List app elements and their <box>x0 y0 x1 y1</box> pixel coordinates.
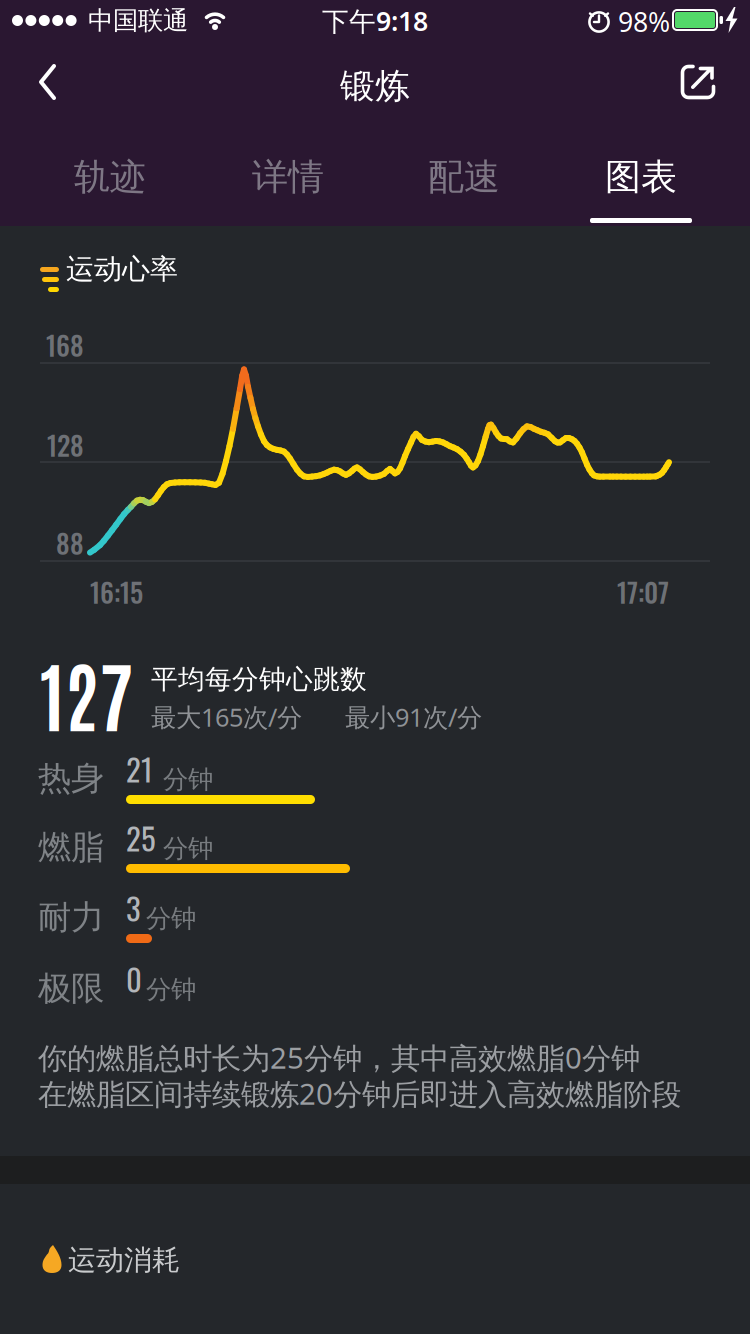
staticText: 配速 <box>428 155 500 199</box>
staticText: 运动心率 <box>66 252 178 286</box>
staticText: 平均每分钟心跳数 <box>151 663 367 696</box>
staticText: 0 <box>126 956 142 1001</box>
staticText: 轨迹 <box>74 155 146 199</box>
staticText: 21 <box>126 746 153 791</box>
staticText: 25 <box>126 815 156 860</box>
staticText: 图表 <box>605 155 677 199</box>
staticText: 分钟 <box>163 833 213 864</box>
staticText: 88 <box>56 523 84 562</box>
staticText: 热身 <box>38 758 104 799</box>
staticText: 127 <box>40 642 138 742</box>
staticText: 你的燃脂总时长为25分钟，其中高效燃脂0分钟 <box>38 1038 640 1077</box>
staticText: 运动消耗 <box>68 1243 180 1277</box>
staticText: 98% <box>618 4 670 39</box>
button[interactable]: 配速 <box>389 142 539 212</box>
staticText: 下午9:18 <box>322 3 428 38</box>
staticText: 分钟 <box>146 903 196 934</box>
button[interactable]: Share <box>674 57 722 105</box>
staticText: 详情 <box>252 155 324 199</box>
staticText: 耐力 <box>38 897 104 938</box>
button[interactable]: Back <box>28 58 76 106</box>
staticText: 最小91次/分 <box>345 700 482 734</box>
button[interactable]: 详情 <box>213 142 363 212</box>
staticText: 3 <box>126 885 141 930</box>
staticText: 极限 <box>38 968 104 1009</box>
button[interactable]: 图表 <box>566 142 716 212</box>
staticText: 分钟 <box>146 974 196 1005</box>
staticText: 17:07 <box>617 572 669 611</box>
staticText: 16:15 <box>90 572 143 611</box>
staticText: 168 <box>46 325 84 364</box>
staticText: 分钟 <box>163 764 213 795</box>
staticText: 最大165次/分 <box>151 700 302 734</box>
staticText: 锻炼 <box>340 65 410 108</box>
staticText: 在燃脂区间持续锻炼20分钟后即进入高效燃脂阶段 <box>38 1074 681 1113</box>
staticText: 中国联通 <box>88 5 188 36</box>
staticText: 燃脂 <box>38 827 104 868</box>
button[interactable]: 轨迹 <box>35 142 185 212</box>
staticText: 128 <box>47 425 84 464</box>
